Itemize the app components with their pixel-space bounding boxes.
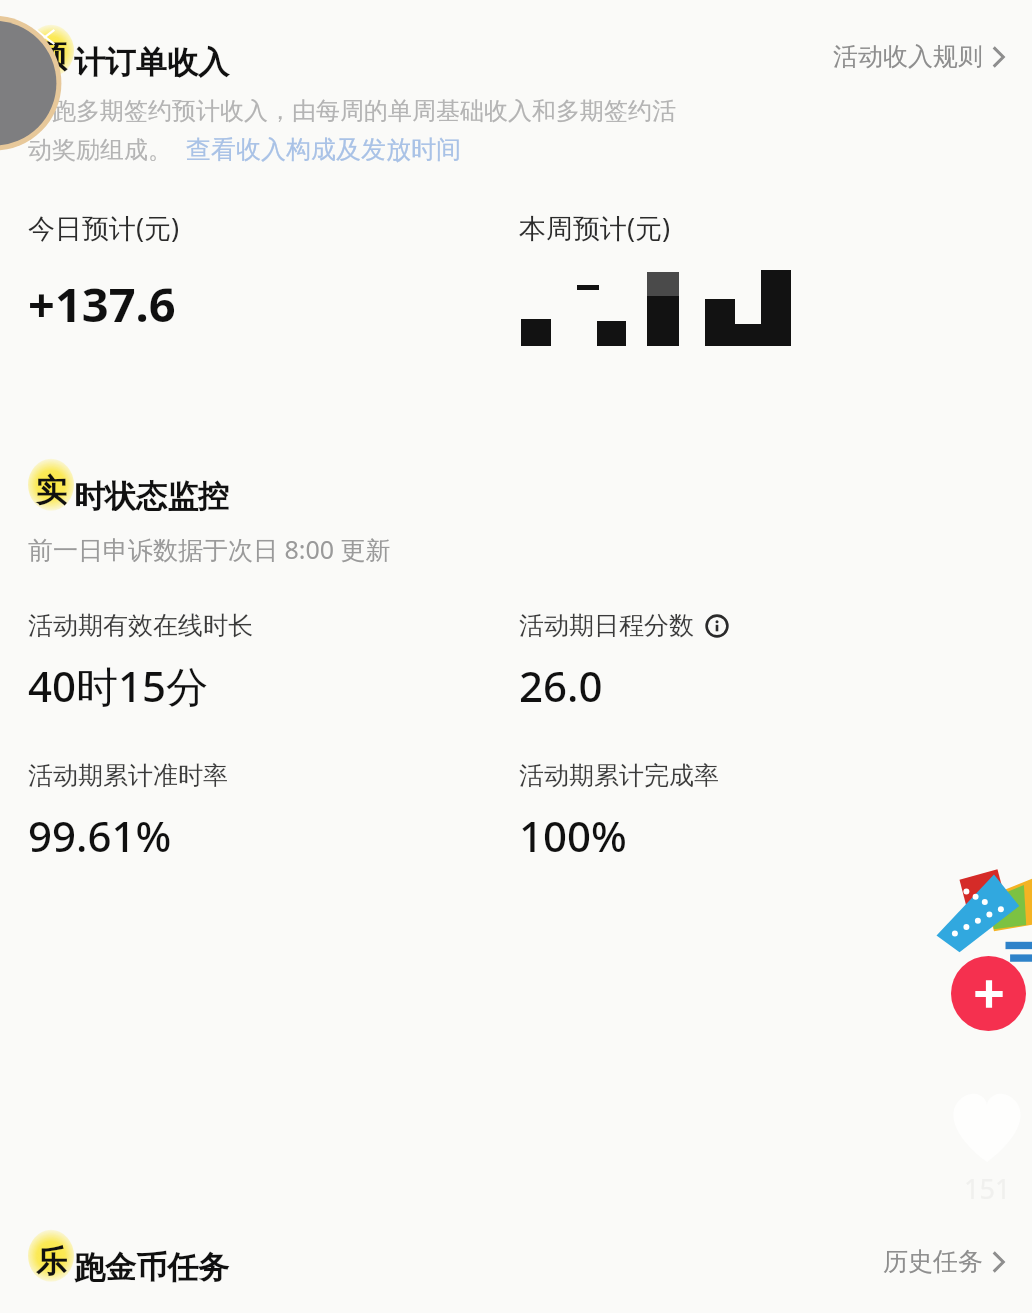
staticText: 今日预计(元)	[28, 209, 180, 246]
staticText: 跑金币任务	[74, 1248, 229, 1287]
staticText: 查看收入构成及发放时间	[186, 134, 461, 165]
staticText: 100%	[519, 807, 627, 864]
staticText: 动奖励组成。	[28, 135, 172, 165]
staticText: 活动收入规则	[833, 41, 983, 72]
staticText: 预	[36, 37, 67, 76]
staticText: 乐	[36, 1242, 67, 1281]
button[interactable]: App badge	[925, 862, 1032, 967]
button[interactable]: 活动收入规则	[829, 35, 1010, 78]
staticText: 前一日申诉数据于次日 8:00 更新	[28, 532, 391, 566]
staticText: 151	[964, 1170, 1011, 1207]
staticText: 26.0	[519, 657, 603, 714]
staticText: +137.6	[28, 272, 176, 336]
button[interactable]: 查看收入构成及发放时间	[186, 134, 461, 165]
staticText: 本周预计(元)	[519, 209, 671, 246]
staticText: 活动期有效在线时长	[28, 610, 253, 641]
staticText: 活动期累计完成率	[519, 760, 719, 791]
staticText: 历史任务	[883, 1246, 983, 1277]
staticText: 40时15分	[28, 657, 209, 714]
staticText: 乐跑多期签约预计收入，由每周的单周基础收入和多期签约活	[28, 96, 1010, 126]
staticText: 活动期累计准时率	[28, 760, 228, 791]
staticText: 时状态监控	[74, 477, 229, 516]
staticText: 计订单收入	[74, 43, 229, 82]
staticText: 99.61%	[28, 807, 172, 864]
staticText: 活动期日程分数	[519, 610, 694, 641]
button[interactable]: 历史任务	[879, 1240, 1010, 1283]
button[interactable]: Info	[704, 613, 730, 639]
button[interactable]: Add	[951, 956, 1026, 1031]
staticText: 实	[36, 471, 67, 510]
